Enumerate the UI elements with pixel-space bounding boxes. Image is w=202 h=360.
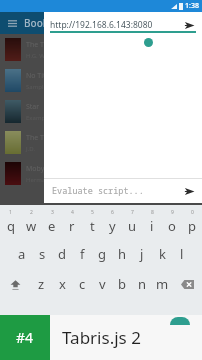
button[interactable]: Run script <box>180 182 198 200</box>
staticText: #4 <box>16 328 34 347</box>
button[interactable]: z <box>31 269 52 299</box>
button[interactable]: The Time Machine <box>0 34 202 65</box>
button[interactable]: g <box>92 239 112 269</box>
staticText: 5 <box>91 209 94 216</box>
staticText: b <box>118 275 126 293</box>
staticText: H.G. Wells <box>26 52 55 60</box>
button[interactable]: l <box>172 239 192 269</box>
staticText: Books <box>24 16 54 30</box>
staticText: c <box>79 275 86 293</box>
staticText: i <box>150 217 154 235</box>
staticText: Example <box>26 114 51 122</box>
staticText: u <box>128 217 137 235</box>
staticText: e <box>48 217 56 235</box>
staticText: j <box>140 245 144 263</box>
button[interactable]: 9 <box>162 209 182 239</box>
staticText: d <box>58 245 66 263</box>
staticText: p <box>188 217 196 235</box>
staticText: 8 <box>151 209 154 216</box>
button[interactable]: v <box>92 269 112 299</box>
button[interactable]: n <box>132 269 152 299</box>
button[interactable]: 7 <box>122 209 142 239</box>
staticText: k <box>159 245 166 263</box>
staticText: 3 <box>51 209 54 216</box>
staticText: g <box>98 245 106 263</box>
button[interactable]: Menu <box>5 16 19 30</box>
staticText: 1 <box>9 209 12 216</box>
staticText: No Title <box>26 71 52 81</box>
staticText: 0 <box>191 209 194 216</box>
staticText: t <box>90 217 95 235</box>
button[interactable]: f <box>72 239 92 269</box>
staticText: 4 <box>71 209 74 216</box>
staticText: o <box>168 217 176 235</box>
button[interactable]: 4 <box>62 209 82 239</box>
button[interactable]: 0 <box>182 209 202 239</box>
staticText: y <box>109 217 116 235</box>
staticText: l <box>180 245 184 263</box>
staticText: z <box>38 275 45 293</box>
staticText: 6 <box>111 209 114 216</box>
staticText: x <box>59 275 66 293</box>
button[interactable]: Star <box>0 96 202 127</box>
staticText: m <box>156 275 169 293</box>
staticText: h <box>118 245 127 263</box>
staticText: Herman <box>26 176 49 184</box>
button[interactable]: c <box>72 269 92 299</box>
staticText: Evaluate script... <box>52 185 180 197</box>
staticText: q <box>7 217 15 235</box>
button[interactable]: a <box>11 239 32 269</box>
button[interactable]: j <box>132 239 152 269</box>
staticText: n <box>138 275 147 293</box>
button[interactable]: b <box>112 269 132 299</box>
button[interactable]: 1 <box>0 209 21 239</box>
staticText: 2 <box>30 209 33 216</box>
staticText: Sample <box>26 83 47 91</box>
staticText: 7 <box>131 209 134 216</box>
button[interactable]: 3 <box>42 209 62 239</box>
staticText: f <box>80 245 85 263</box>
button[interactable]: No Title <box>0 65 202 96</box>
staticText: s <box>39 245 46 263</box>
button[interactable]: Tabris.js 2 <box>62 326 141 349</box>
button[interactable]: m <box>152 269 172 299</box>
staticText: Moby Dick <box>26 164 61 174</box>
staticText: 1:38 <box>185 1 199 11</box>
staticText: a <box>18 245 26 263</box>
button[interactable]: Connect <box>180 16 198 34</box>
staticText: r <box>69 217 75 235</box>
staticText: w <box>26 217 37 235</box>
button[interactable]: 2 <box>21 209 42 239</box>
staticText: The Time Machine <box>26 40 87 50</box>
button[interactable]: 5 <box>82 209 102 239</box>
staticText: The Trial <box>26 133 54 143</box>
button[interactable]: d <box>52 239 72 269</box>
button[interactable]: k <box>152 239 172 269</box>
button[interactable]: x <box>52 269 72 299</box>
button[interactable]: Backspace <box>172 269 202 299</box>
button[interactable]: 6 <box>102 209 122 239</box>
staticText: 9 <box>171 209 174 216</box>
button[interactable]: Moby Dick <box>0 158 202 189</box>
staticText: v <box>99 275 106 293</box>
staticText: Star <box>26 102 40 112</box>
button[interactable]: s <box>32 239 52 269</box>
staticText: http://192.168.6.143:8080 <box>50 19 176 31</box>
button[interactable]: h <box>112 239 132 269</box>
button[interactable]: The Trial <box>0 127 202 158</box>
button[interactable]: Shift <box>0 269 31 299</box>
button[interactable]: 8 <box>142 209 162 239</box>
button[interactable]: #4 <box>0 315 50 360</box>
